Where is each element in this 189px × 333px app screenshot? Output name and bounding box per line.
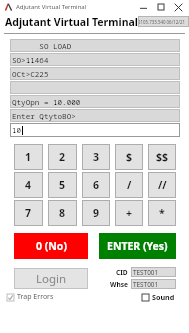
staticText: * (159, 206, 165, 220)
staticText: Adjutant Virtual Terminal (5, 15, 138, 29)
button[interactable]: 10 (10, 123, 180, 137)
button[interactable]: 0 (No) (14, 233, 88, 259)
staticText: $$ (156, 150, 169, 164)
staticText: / (127, 178, 132, 192)
staticText: 10 (12, 125, 22, 135)
button[interactable]: 3 (82, 144, 110, 170)
staticText: // (158, 178, 167, 192)
staticText: QtyOpn = 10.000 (12, 97, 81, 107)
staticText: 1 (25, 150, 32, 164)
staticText: SO LOAD (12, 41, 72, 51)
staticText: 3 (93, 150, 100, 164)
button[interactable]: 4 (14, 172, 43, 198)
button[interactable]: Sound (142, 292, 175, 302)
button[interactable]: 1 (14, 144, 43, 170)
staticText: OCt>C225 (12, 69, 49, 79)
button[interactable]: 8 (48, 200, 77, 226)
staticText: Trap Errors (17, 292, 54, 302)
button[interactable]: 9 (82, 200, 110, 226)
button[interactable]: $$ (148, 144, 176, 170)
button[interactable]: Login (14, 268, 88, 289)
staticText: 5 (59, 178, 66, 192)
button[interactable]: 2 (48, 144, 77, 170)
button[interactable]: TEST001 (131, 279, 176, 289)
staticText: 2 (59, 150, 66, 164)
staticText: 4 (25, 178, 32, 192)
button[interactable]: 5 (48, 172, 77, 198)
staticText: Login (36, 271, 67, 287)
staticText: ENTER (Yes) (107, 239, 168, 253)
button[interactable]: TEST001 (131, 267, 176, 277)
staticText: CID (116, 268, 128, 277)
button[interactable]: // (148, 172, 176, 198)
staticText: 8 (59, 206, 66, 220)
button[interactable]: Maximize (152, 1, 169, 13)
staticText: $ (126, 150, 133, 164)
staticText: Whse (110, 280, 128, 289)
staticText: Adjutant Virtual Terminal (16, 3, 87, 11)
staticText: Sound (152, 292, 175, 302)
staticText: + (126, 206, 133, 220)
button[interactable]: 7 (14, 200, 43, 226)
button[interactable]: / (115, 172, 143, 198)
staticText: TEST001 (133, 268, 159, 277)
staticText: SO>11464 (12, 55, 49, 65)
button[interactable]: Trap Errors (7, 292, 54, 302)
staticText: 2105.733.540 06/12/21 13:48:42 (138, 19, 189, 25)
button[interactable]: + (115, 200, 143, 226)
staticText: 6 (93, 178, 100, 192)
staticText: 7 (25, 206, 32, 220)
staticText: Enter QtytoBO> (12, 111, 76, 121)
staticText: 9 (93, 206, 100, 220)
button[interactable]: ENTER (Yes) (99, 233, 176, 259)
button[interactable]: * (148, 200, 176, 226)
staticText: 0 (No) (36, 239, 67, 253)
button[interactable]: $ (115, 144, 143, 170)
button[interactable]: Minimize (135, 1, 152, 13)
button[interactable]: 6 (82, 172, 110, 198)
button[interactable]: Close (169, 1, 187, 13)
staticText: TEST001 (133, 280, 159, 289)
